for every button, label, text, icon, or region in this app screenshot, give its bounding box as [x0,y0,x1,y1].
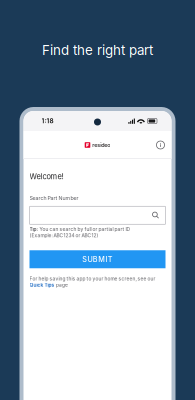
staticText: (Example: ABC1234 or ABC12) [29,232,98,238]
button[interactable]: Information [153,138,167,152]
staticText: resideo [92,142,110,148]
staticText: Welcome! [29,172,63,181]
button[interactable]: SUBMIT [29,250,165,268]
staticText: Find the right part [42,42,153,58]
button[interactable]: Quick Tips [29,282,68,288]
staticText: 1:18 [41,117,53,125]
staticText: Tip: You can search by full or partial p… [29,226,129,232]
staticText: For help saving this app to your home sc… [29,276,155,282]
staticText: Search Part Number [29,195,78,201]
staticText: Quick Tips [29,282,54,288]
staticText: page [56,282,68,288]
staticText: SUBMIT [82,255,113,264]
